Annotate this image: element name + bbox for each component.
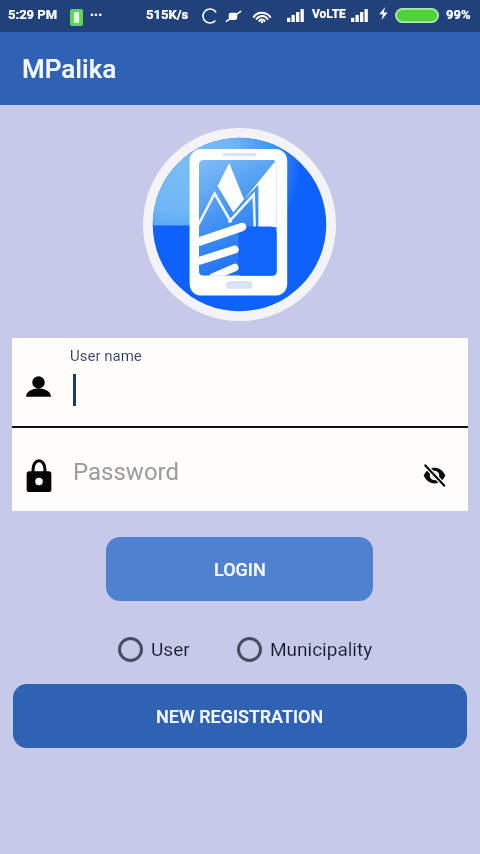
staticText: MPalika <box>22 54 117 84</box>
button[interactable]: Show password <box>423 465 446 486</box>
staticText: 5:29 PM <box>8 7 58 22</box>
staticText: User <box>151 638 190 660</box>
button[interactable]: NEW REGISTRATION <box>13 684 467 748</box>
staticText: VoLTE <box>312 7 346 21</box>
staticText: NEW REGISTRATION <box>156 706 324 727</box>
staticText: LOGIN <box>214 559 266 580</box>
staticText: ... <box>90 3 103 19</box>
button[interactable]: Municipality <box>237 629 373 669</box>
staticText: 99% <box>446 7 471 22</box>
button[interactable]: LOGIN <box>106 537 373 601</box>
staticText: User name <box>70 347 142 365</box>
staticText: Password <box>73 458 180 486</box>
button[interactable]: Password <box>12 428 468 511</box>
button[interactable]: User name <box>12 338 468 426</box>
button[interactable]: User <box>118 629 190 669</box>
staticText: Municipality <box>270 638 373 660</box>
staticText: 515K/s <box>146 7 189 22</box>
